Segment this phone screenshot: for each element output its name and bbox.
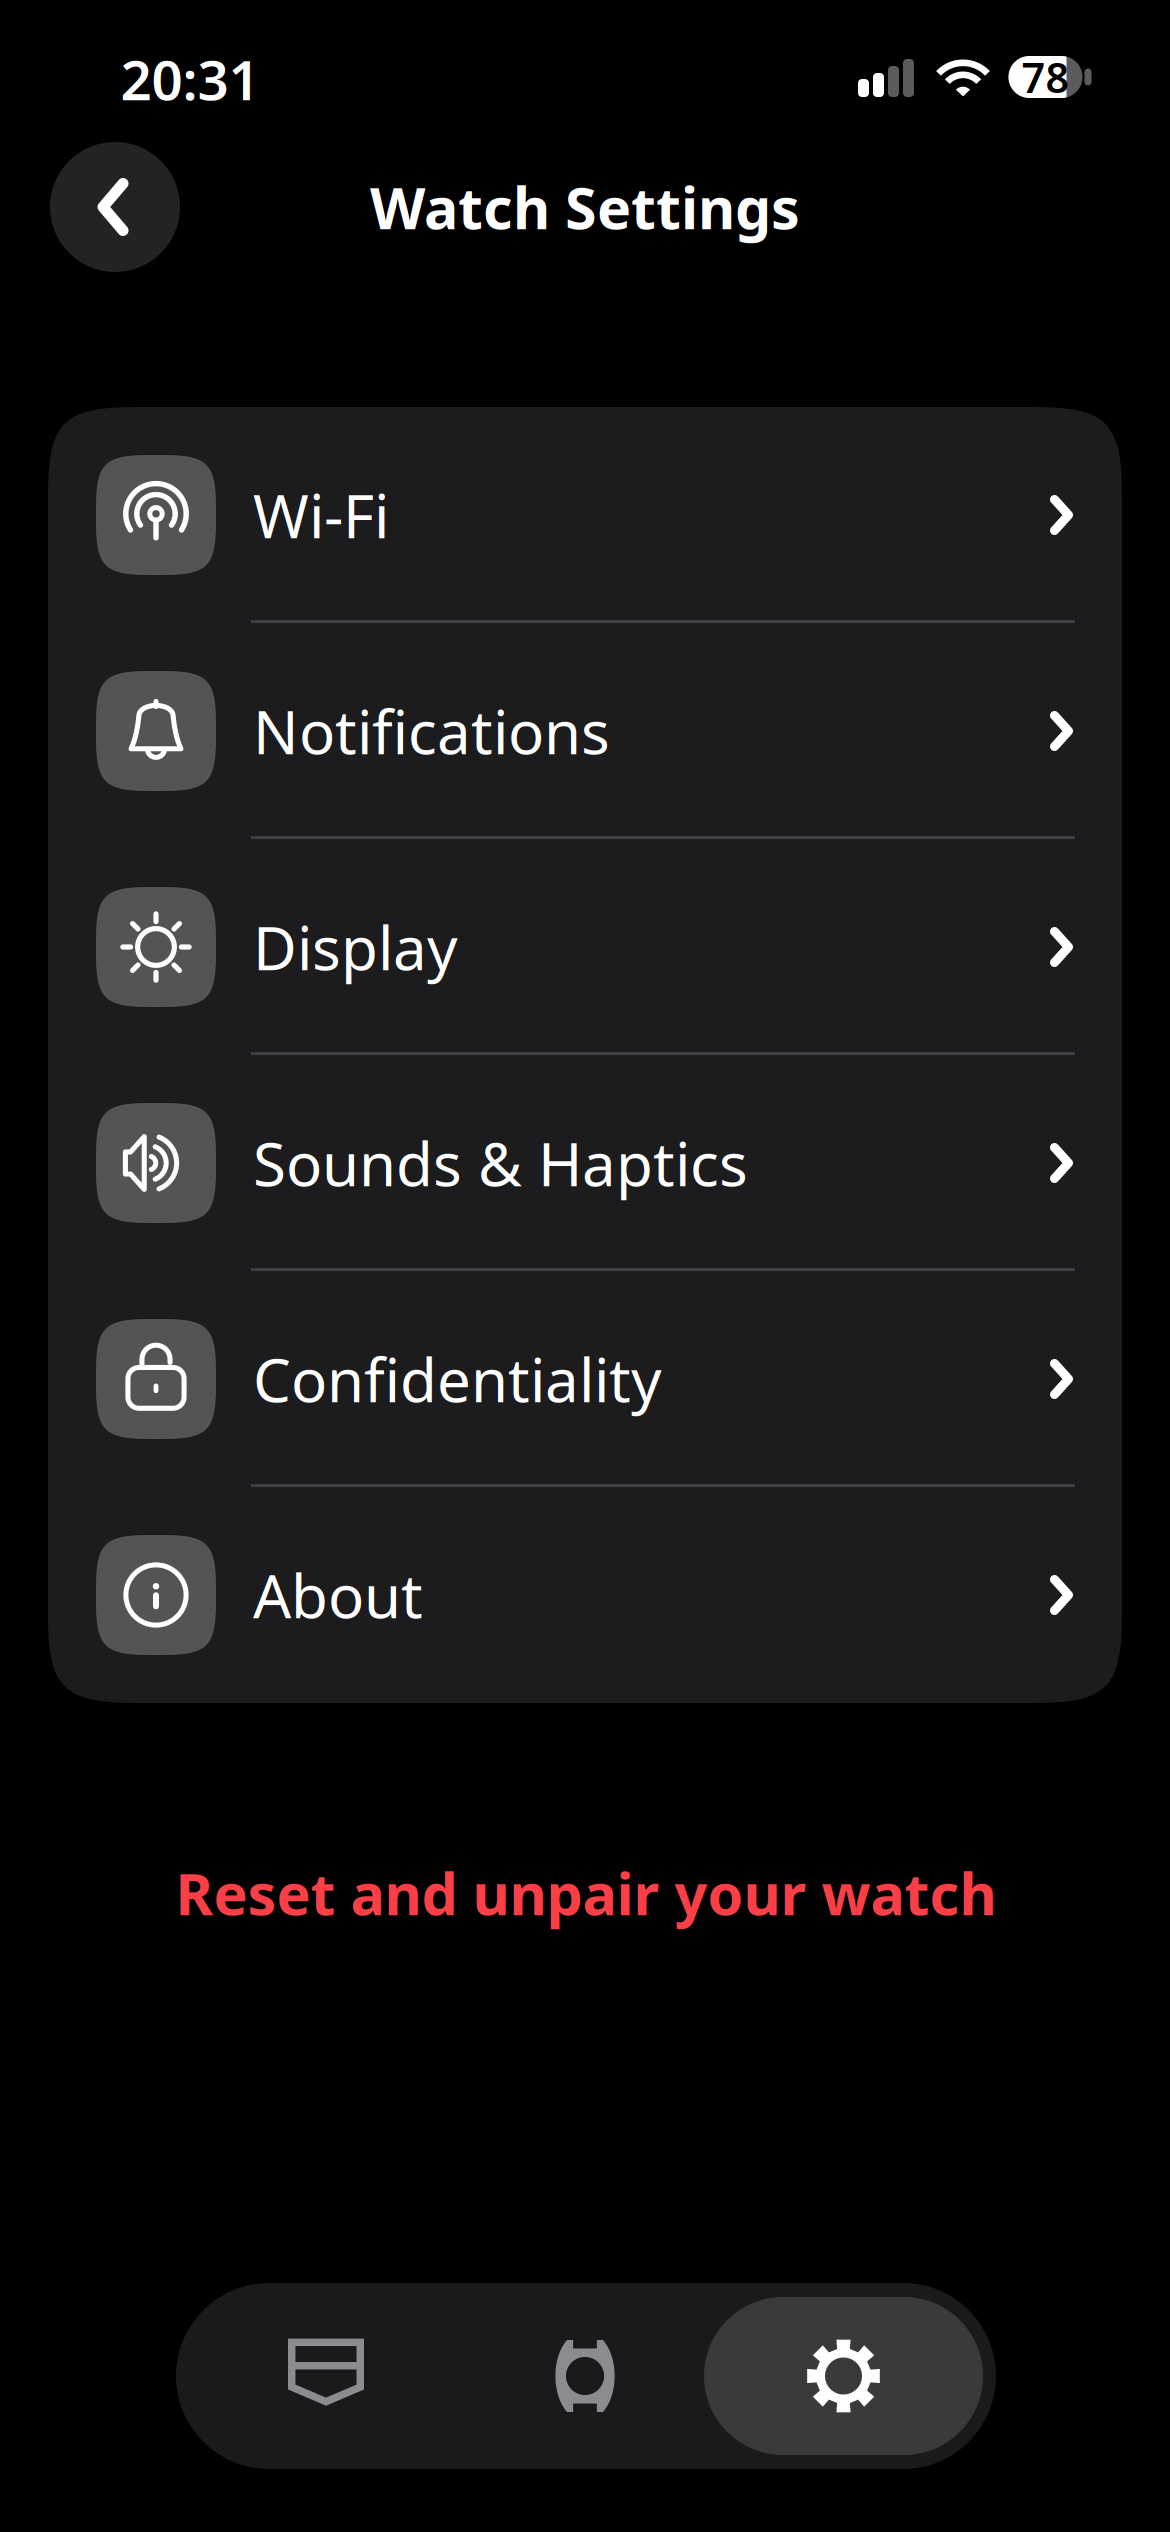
button[interactable]: Cards bbox=[197, 2296, 455, 2456]
button[interactable]: Notifications bbox=[48, 623, 1122, 839]
staticText: 78 bbox=[1021, 50, 1069, 104]
button[interactable]: Watch bbox=[456, 2296, 714, 2456]
button[interactable]: Sounds & Haptics bbox=[48, 1055, 1122, 1271]
staticText: Reset and unpair your watch bbox=[175, 1855, 996, 1931]
staticText: Confidentiality bbox=[253, 1339, 662, 1419]
staticText: Display bbox=[253, 907, 458, 987]
staticText: Notifications bbox=[253, 691, 610, 771]
button[interactable]: Wi-Fi bbox=[48, 407, 1122, 623]
button[interactable]: Confidentiality bbox=[48, 1271, 1122, 1487]
button[interactable]: About bbox=[48, 1487, 1122, 1703]
staticText: About bbox=[253, 1555, 423, 1635]
staticText: Sounds & Haptics bbox=[253, 1123, 748, 1203]
button[interactable]: Display bbox=[48, 839, 1122, 1055]
button[interactable]: Settings bbox=[704, 2297, 983, 2455]
staticText: Watch Settings bbox=[370, 169, 800, 245]
staticText: 20:31 bbox=[120, 43, 259, 115]
button[interactable]: Reset and unpair your watch bbox=[136, 1838, 1036, 1948]
staticText: Wi-Fi bbox=[253, 475, 389, 555]
button[interactable]: Back bbox=[50, 142, 180, 272]
